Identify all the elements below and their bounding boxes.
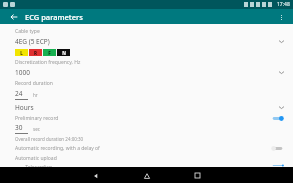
staticText: - Telecardian: [21, 164, 271, 167]
button[interactable]: Home: [140, 169, 153, 182]
staticText: 17:48: [277, 1, 290, 8]
staticText: 4EG (5 ECP): [15, 37, 279, 46]
button[interactable]: N: [57, 49, 70, 56]
button[interactable]: R: [29, 49, 42, 56]
staticText: ECG parameters: [25, 12, 83, 22]
button[interactable]: 4EG (5 ECP): [15, 37, 284, 46]
staticText: Discretization frequency, Hz: [15, 59, 81, 66]
staticText: Overall record duration 24:00:30: [15, 136, 84, 142]
button[interactable]: More options: [275, 11, 287, 23]
button[interactable]: 24: [15, 89, 28, 100]
staticText: 1000: [15, 68, 279, 77]
button[interactable]: 1000: [15, 68, 284, 77]
button[interactable]: Preliminary record: [15, 115, 284, 122]
button[interactable]: L: [15, 49, 28, 56]
staticText: Preliminary record: [15, 115, 271, 122]
staticText: R: [34, 50, 37, 56]
button[interactable]: F: [43, 49, 56, 56]
button[interactable]: - Telecardian: [15, 164, 284, 167]
staticText: L: [20, 50, 23, 56]
button[interactable]: 30: [15, 123, 28, 134]
button[interactable]: Recent apps: [191, 169, 204, 182]
staticText: sec: [33, 126, 40, 132]
staticText: F: [48, 50, 51, 56]
staticText: Automatic upload: [15, 155, 57, 162]
staticText: Hours: [15, 103, 279, 112]
staticText: Cable type: [15, 28, 40, 35]
button[interactable]: Automatic recording, with a delay of: [15, 145, 284, 152]
staticText: 24: [15, 89, 23, 98]
staticText: N: [62, 50, 66, 56]
button[interactable]: Hours: [15, 103, 284, 112]
staticText: hr: [33, 92, 38, 98]
staticText: Automatic recording, with a delay of: [15, 145, 271, 152]
button[interactable]: Navigate up: [8, 11, 20, 23]
staticText: Record duration: [15, 80, 53, 87]
button[interactable]: Back: [89, 169, 102, 182]
staticText: 30: [15, 123, 23, 132]
